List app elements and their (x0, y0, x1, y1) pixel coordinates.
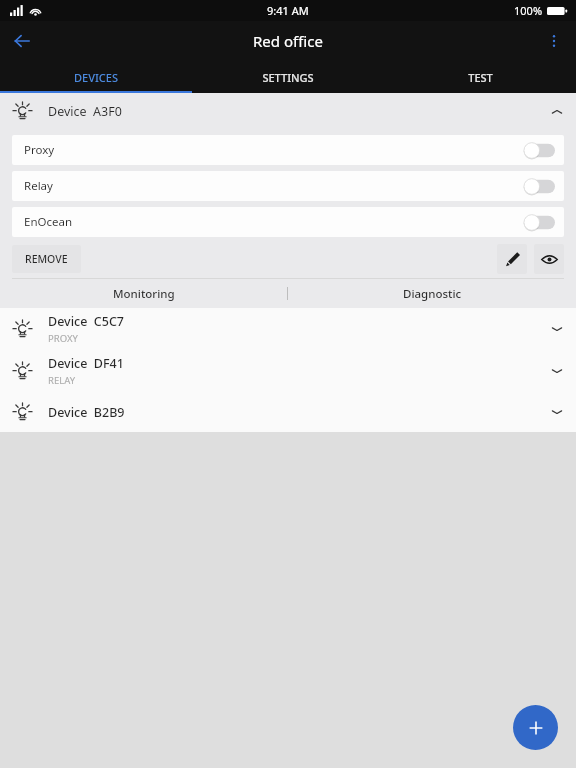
button[interactable]: Relay (12, 171, 564, 201)
staticText: Proxy (24, 142, 55, 158)
staticText: Device A3F0 (48, 103, 122, 120)
button[interactable]: More options (538, 25, 570, 57)
staticText: RELAY (48, 374, 76, 387)
staticText: Relay (24, 178, 53, 194)
button[interactable]: Back (6, 25, 38, 57)
staticText: Diagnostic (403, 286, 462, 302)
button[interactable]: EnOcean (12, 207, 564, 237)
button[interactable]: Edit (497, 244, 527, 274)
button[interactable]: REMOVE (12, 245, 81, 273)
staticText: Red office (253, 31, 323, 51)
staticText: Device DF41 (48, 355, 124, 372)
button[interactable]: Diagnostic (288, 279, 576, 308)
staticText: SETTINGS (262, 70, 314, 85)
button[interactable]: TEST (384, 61, 576, 93)
staticText: Device B2B9 (48, 404, 125, 421)
staticText: EnOcean (24, 214, 73, 230)
button[interactable]: DEVICES (0, 61, 192, 93)
button[interactable]: Monitoring (0, 279, 287, 308)
button[interactable]: Add device (513, 705, 558, 750)
staticText: REMOVE (25, 252, 68, 266)
button[interactable]: Proxy (12, 135, 564, 165)
staticText: Device C5C7 (48, 313, 125, 330)
staticText: 100% (514, 3, 543, 18)
button[interactable]: Device C5C7 (0, 308, 576, 350)
button[interactable]: View (534, 244, 564, 274)
button[interactable]: Device B2B9 (0, 392, 576, 432)
button[interactable]: Device A3F0 (0, 93, 576, 130)
button[interactable]: SETTINGS (192, 61, 384, 93)
staticText: 9:41 AM (267, 3, 309, 18)
staticText: Monitoring (113, 286, 175, 302)
button[interactable]: Device DF41 (0, 350, 576, 392)
staticText: TEST (468, 70, 493, 85)
staticText: PROXY (48, 332, 78, 345)
staticText: DEVICES (74, 70, 118, 85)
